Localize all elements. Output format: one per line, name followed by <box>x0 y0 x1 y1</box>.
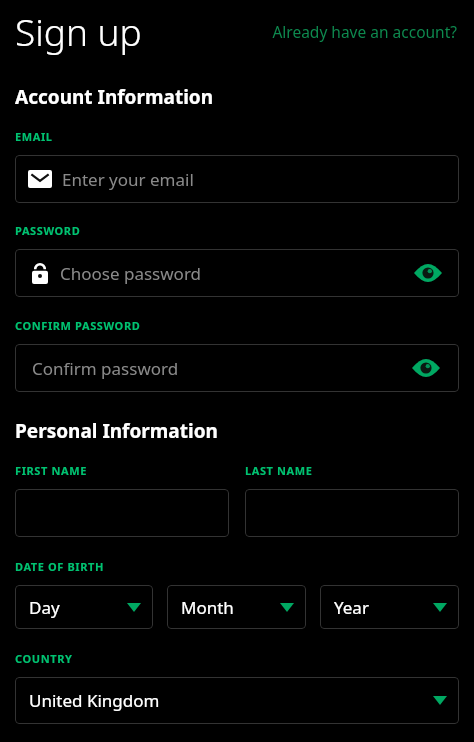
button[interactable]: Year <box>320 585 459 629</box>
button[interactable]: Day <box>15 585 153 629</box>
button[interactable] <box>245 489 459 537</box>
button[interactable]: Enter your email <box>15 155 459 203</box>
staticText: CONFIRM PASSWORD <box>15 318 141 333</box>
staticText: Enter your email <box>62 168 194 191</box>
staticText: LAST NAME <box>245 463 313 478</box>
staticText: United Kingdom <box>29 689 427 712</box>
button[interactable]: Confirm password <box>15 344 459 392</box>
button[interactable]: Month <box>167 585 306 629</box>
staticText: Account Information <box>15 84 214 110</box>
staticText: COUNTRY <box>15 651 73 666</box>
staticText: DATE OF BIRTH <box>15 559 105 574</box>
button[interactable]: United Kingdom <box>15 677 459 724</box>
button[interactable]: Show confirm password <box>410 357 442 379</box>
button[interactable]: Choose password <box>15 249 459 297</box>
staticText: EMAIL <box>15 129 53 144</box>
staticText: FIRST NAME <box>15 463 87 478</box>
staticText: Year <box>334 596 427 619</box>
staticText: Sign up <box>15 6 142 56</box>
staticText: Personal Information <box>15 418 218 444</box>
staticText: Month <box>181 596 274 619</box>
staticText: Already have an account? <box>272 21 457 42</box>
staticText: Confirm password <box>32 357 179 380</box>
button[interactable]: Already have an account? <box>270 15 459 48</box>
staticText: Choose password <box>60 262 202 285</box>
button[interactable] <box>15 489 229 537</box>
staticText: PASSWORD <box>15 223 81 238</box>
button[interactable]: Show password <box>412 262 444 284</box>
staticText: Day <box>29 596 121 619</box>
